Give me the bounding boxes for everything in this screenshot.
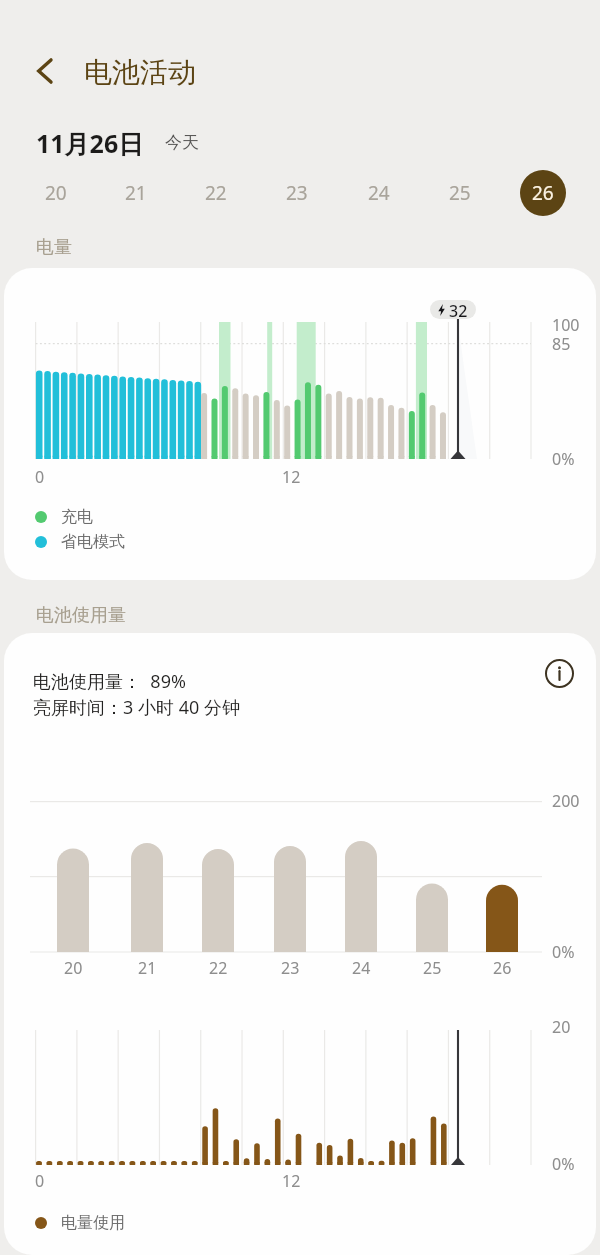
staticText: 23 — [281, 957, 300, 979]
staticText: 12 — [282, 466, 301, 488]
staticText: 11月26日 — [36, 126, 144, 160]
staticText: 今天 — [165, 132, 199, 153]
staticText: 0% — [552, 941, 575, 963]
staticText: 0 — [35, 1170, 45, 1192]
staticText: 20 — [64, 957, 83, 979]
staticText: 省电模式 — [61, 532, 125, 552]
staticText: 充电 — [61, 507, 93, 527]
button[interactable]: 21 — [113, 170, 159, 216]
staticText: 25 — [449, 180, 471, 206]
staticText: 32 — [449, 300, 468, 319]
staticText: 20 — [45, 180, 67, 206]
staticText: 23 — [286, 180, 308, 206]
button[interactable]: 25 — [437, 170, 483, 216]
staticText: 0% — [552, 1153, 575, 1175]
staticText: 电池活动 — [84, 55, 196, 90]
staticText: 25 — [423, 957, 442, 979]
staticText: 200 — [552, 790, 580, 812]
staticText: 85 — [552, 333, 571, 355]
button[interactable]: 24 — [356, 170, 402, 216]
staticText: 0 — [35, 466, 45, 488]
staticText: 20 — [552, 1016, 571, 1038]
staticText: 12 — [282, 1170, 301, 1192]
staticText: 100 — [552, 314, 580, 336]
staticText: 24 — [368, 180, 390, 206]
staticText: 亮屏时间：3 小时 40 分钟 — [33, 695, 240, 720]
staticText: 21 — [138, 957, 157, 979]
staticText: 26 — [493, 957, 512, 979]
button[interactable]: Info — [535, 649, 583, 697]
staticText: 24 — [352, 957, 371, 979]
button[interactable]: Back — [23, 49, 67, 93]
staticText: 26 — [532, 180, 554, 206]
button[interactable]: 20 — [33, 170, 79, 216]
staticText: 22 — [209, 957, 228, 979]
staticText: 电池使用量 — [36, 604, 126, 627]
staticText: 电池使用量： 89% — [33, 669, 186, 694]
button[interactable]: 23 — [274, 170, 320, 216]
staticText: 电量使用 — [61, 1213, 125, 1233]
staticText: 0% — [552, 448, 575, 470]
staticText: 电量 — [36, 236, 72, 259]
button[interactable]: 26 — [520, 170, 566, 216]
button[interactable]: 22 — [193, 170, 239, 216]
staticText: 22 — [205, 180, 227, 206]
staticText: 21 — [125, 180, 147, 206]
